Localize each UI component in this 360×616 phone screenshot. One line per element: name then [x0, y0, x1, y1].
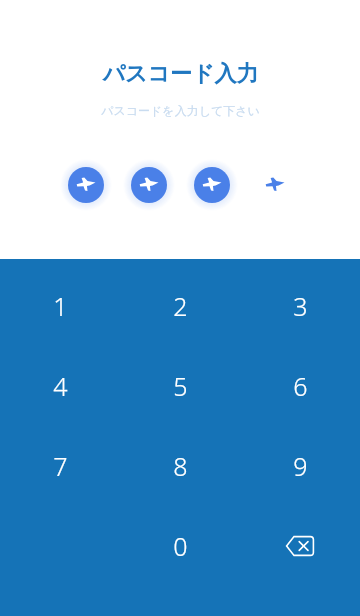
staticText: パスコードを入力して下さい	[101, 103, 260, 118]
button[interactable]: 8	[120, 426, 240, 506]
staticText: 0	[173, 529, 188, 563]
button[interactable]: 4	[0, 346, 120, 426]
staticText: 8	[173, 449, 188, 483]
staticText: 9	[293, 449, 308, 483]
staticText: 1	[53, 289, 68, 323]
staticText: 3	[293, 289, 308, 323]
button[interactable]: 5	[120, 346, 240, 426]
button[interactable]: 1	[0, 265, 120, 346]
button[interactable]: 9	[240, 426, 360, 506]
staticText: 7	[53, 449, 68, 483]
button[interactable]: 0	[120, 506, 240, 586]
button[interactable]: 7	[0, 426, 120, 506]
staticText: パスコード入力	[102, 60, 259, 88]
staticText: 6	[293, 369, 308, 403]
button[interactable]: 6	[240, 346, 360, 426]
button[interactable]: Backspace	[240, 506, 360, 586]
staticText: 5	[173, 369, 188, 403]
staticText: 2	[173, 289, 188, 323]
staticText: 4	[53, 369, 68, 403]
button[interactable]: 2	[120, 265, 240, 346]
button[interactable]: 3	[240, 265, 360, 346]
